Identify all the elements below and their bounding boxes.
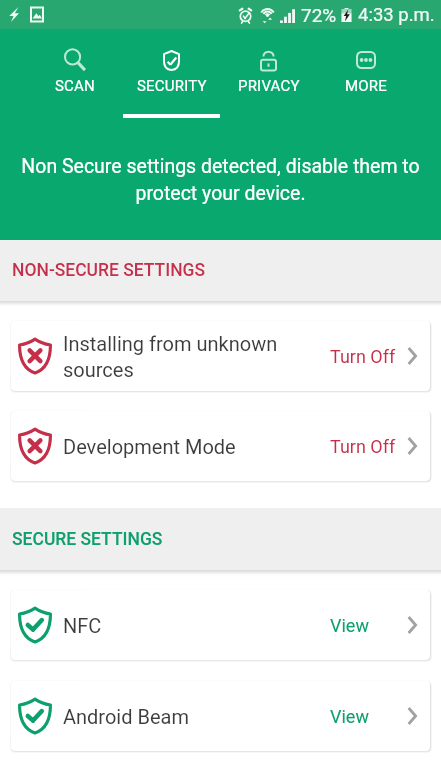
button[interactable]: SCAN <box>27 29 123 118</box>
staticText: Installing from unknown sources <box>63 332 330 381</box>
staticText: Development Mode <box>63 435 330 458</box>
staticText: SCAN <box>55 77 95 95</box>
button[interactable]: SECURITY <box>123 29 220 118</box>
staticText: Non Secure settings detected, disable th… <box>12 155 429 204</box>
staticText: PRIVACY <box>238 77 300 95</box>
button[interactable]: Android Beam <box>11 681 430 751</box>
staticText: MORE <box>345 77 387 95</box>
button[interactable]: Installing from unknown sources <box>11 321 430 391</box>
staticText: SECURITY <box>137 77 207 95</box>
staticText: 4:33 p.m. <box>358 4 435 26</box>
staticText: Android Beam <box>63 705 330 728</box>
button[interactable]: NFC <box>11 590 430 660</box>
staticText: Turn Off <box>330 436 396 457</box>
staticText: NON-SECURE SETTINGS <box>12 260 206 281</box>
staticText: View <box>330 706 369 727</box>
button[interactable]: PRIVACY <box>220 29 317 118</box>
staticText: SECURE SETTINGS <box>12 529 163 550</box>
button[interactable]: MORE <box>317 29 414 118</box>
button[interactable]: Development Mode <box>11 411 430 481</box>
staticText: View <box>330 615 369 636</box>
staticText: Turn Off <box>330 346 396 367</box>
staticText: 72% <box>301 4 337 26</box>
staticText: NFC <box>63 614 330 637</box>
